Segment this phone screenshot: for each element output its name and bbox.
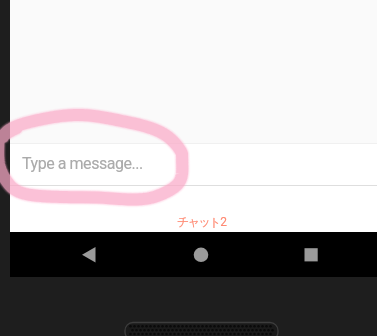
button[interactable]: Type a message... <box>0 143 377 186</box>
staticText: Type a message... <box>22 154 143 173</box>
button[interactable]: Back <box>73 239 105 271</box>
button[interactable]: Recent apps <box>295 239 327 271</box>
button[interactable]: Home <box>185 239 217 271</box>
staticText: チャット2 <box>177 214 226 229</box>
